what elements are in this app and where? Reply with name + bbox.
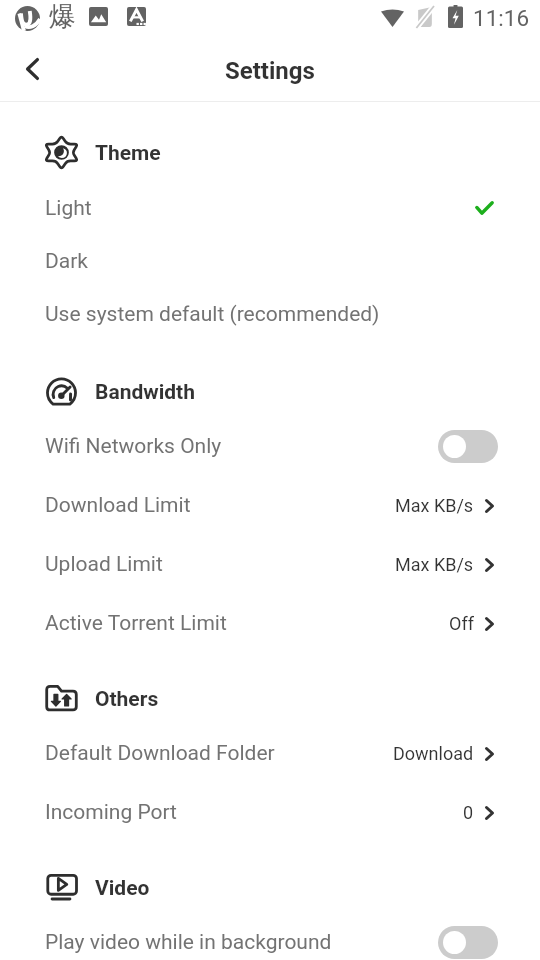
staticText: Incoming Port [45, 800, 177, 825]
staticText: Download [393, 743, 474, 764]
button[interactable]: Play video while in background [0, 916, 540, 960]
staticText: Download Limit [45, 493, 191, 518]
staticText: Settings [225, 57, 315, 85]
button[interactable]: Upload Limit [0, 538, 540, 590]
button[interactable]: Use system default (recommended) [0, 290, 540, 338]
staticText: Max KB/s [395, 495, 474, 516]
button[interactable]: Download Limit [0, 479, 540, 531]
staticText: Max KB/s [395, 554, 474, 575]
staticText: Dark [45, 249, 88, 274]
staticText: 11:16 [473, 5, 530, 31]
staticText: Wifi Networks Only [45, 434, 222, 459]
button[interactable]: Default Download Folder [0, 727, 540, 779]
staticText: Theme [95, 141, 161, 166]
staticText: Bandwidth [95, 380, 195, 405]
staticText: Default Download Folder [45, 741, 275, 766]
button[interactable]: Light [0, 184, 540, 232]
staticText: Use system default (recommended) [45, 302, 380, 327]
staticText: 0 [463, 802, 474, 823]
staticText: Video [95, 876, 150, 901]
staticText: 爆 [49, 0, 76, 34]
button[interactable]: Incoming Port [0, 786, 540, 838]
button[interactable]: Wifi Networks Only [0, 420, 540, 472]
button[interactable]: Active Torrent Limit [0, 597, 540, 649]
button[interactable]: Back [10, 47, 54, 91]
staticText: Play video while in background [45, 930, 332, 955]
button[interactable]: Dark [0, 237, 540, 285]
staticText: Active Torrent Limit [45, 611, 227, 636]
staticText: Others [95, 687, 159, 712]
staticText: Light [45, 196, 92, 221]
staticText: Off [449, 613, 474, 634]
staticText: Upload Limit [45, 552, 163, 577]
